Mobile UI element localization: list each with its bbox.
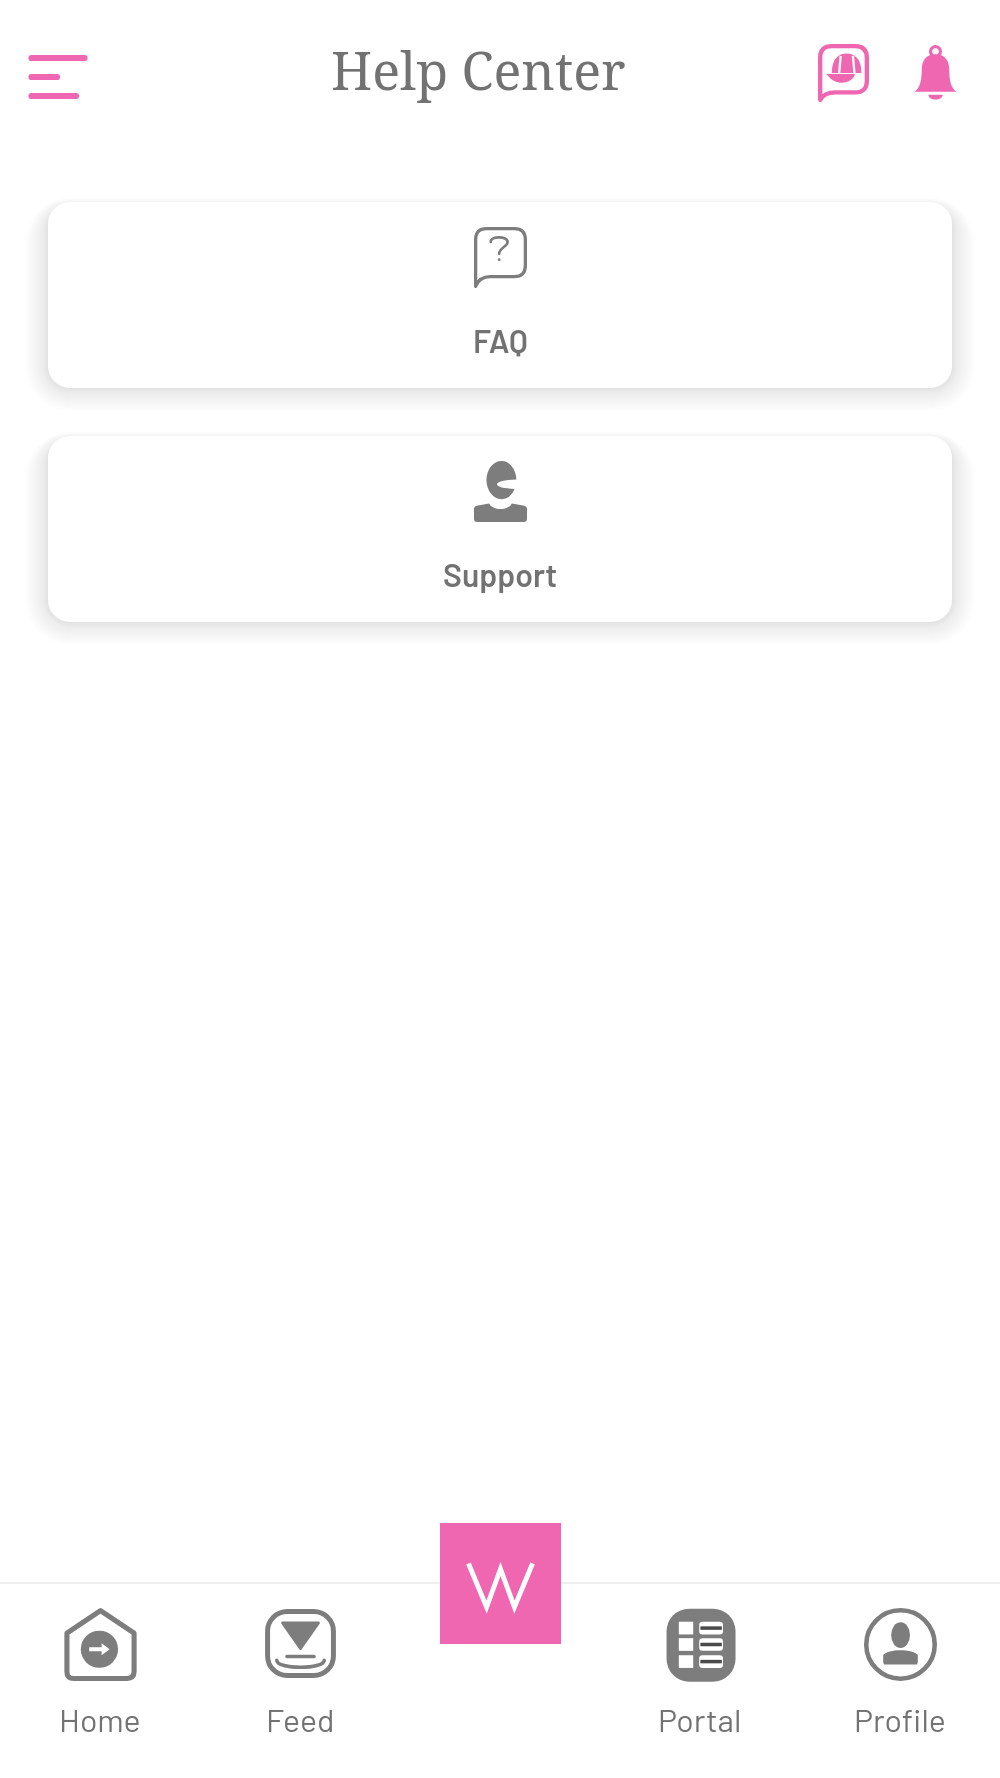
staticText: Help Center — [331, 34, 626, 105]
button[interactable]: FAQ — [48, 202, 952, 388]
staticText: Portal — [658, 1700, 742, 1738]
staticText: Profile — [854, 1700, 946, 1738]
button[interactable]: Support — [48, 436, 952, 622]
button[interactable]: Support chat — [818, 44, 869, 102]
staticText: FAQ — [473, 321, 528, 359]
button[interactable]: Profile — [800, 1584, 1000, 1778]
staticText: Home — [59, 1700, 141, 1738]
button[interactable]: Feed — [200, 1584, 400, 1778]
button[interactable]: Portal — [600, 1584, 800, 1778]
staticText: Support — [443, 555, 558, 593]
staticText: Feed — [266, 1700, 335, 1738]
button[interactable]: Notifications — [914, 43, 957, 102]
button[interactable]: Open navigation menu — [18, 48, 98, 106]
button[interactable]: Wattpad home — [440, 1523, 561, 1644]
button[interactable]: Home — [0, 1584, 200, 1778]
